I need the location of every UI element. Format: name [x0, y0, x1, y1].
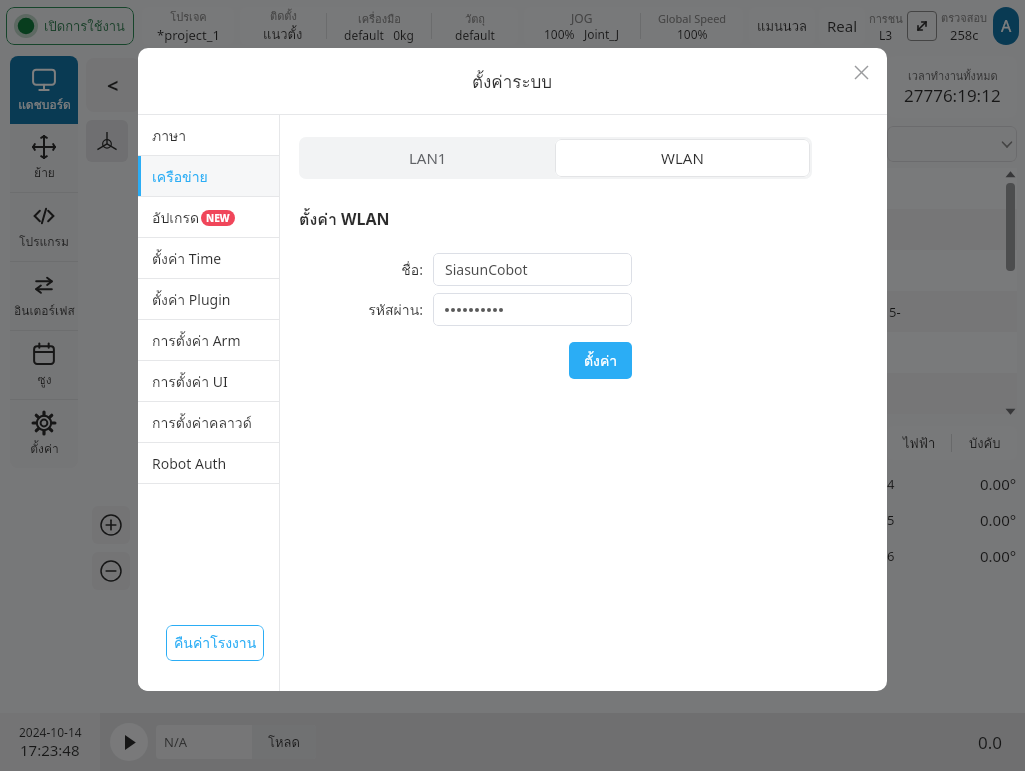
staticText: แนวตั้ง [263, 24, 303, 45]
button[interactable] [887, 168, 1017, 209]
staticText: ตั้งค่า Time [152, 248, 222, 270]
staticText: default [455, 27, 495, 43]
staticText: < [107, 72, 119, 99]
button[interactable] [445, 293, 620, 326]
staticText: อัปเกรด [152, 207, 200, 229]
staticText: Real [827, 16, 858, 36]
staticText: WLAN [661, 148, 704, 168]
button[interactable]: ย้าย [10, 124, 78, 192]
button[interactable]: เครือข่าย [138, 156, 279, 197]
button[interactable]: โปรแกรม [10, 193, 78, 261]
staticText: Robot Auth [152, 454, 227, 473]
button[interactable]: Real [819, 7, 865, 45]
button[interactable]: โปรเจค [142, 7, 234, 45]
button[interactable] [887, 126, 1017, 162]
button[interactable]: 5- [887, 291, 1017, 332]
staticText: แดชบอร์ด [18, 95, 71, 114]
button[interactable]: Fullscreen [907, 11, 937, 41]
staticText: รหัสผ่าน: [368, 299, 423, 321]
staticText: การตั้งค่า Arm [152, 330, 241, 352]
staticText: L3 [879, 27, 893, 43]
staticText: โหลด [268, 732, 300, 753]
staticText: LAN1 [409, 148, 447, 168]
staticText: ซูง [37, 370, 52, 389]
staticText: ตั้งค่า [584, 350, 618, 372]
button[interactable]: Robot Auth [138, 443, 279, 484]
button[interactable]: อินเตอร์เฟส [10, 262, 78, 330]
button[interactable]: Axis [86, 120, 128, 162]
button[interactable]: 6 [887, 538, 1017, 574]
button[interactable]: SiasunCobot [445, 253, 620, 286]
button[interactable]: Play [110, 723, 148, 761]
button[interactable]: JOG [524, 7, 743, 45]
button[interactable]: Close [849, 60, 873, 84]
staticText: การตั้งค่า UI [152, 371, 228, 393]
staticText: 17:23:48 [20, 740, 80, 760]
staticText: เครื่องมือ [358, 10, 401, 27]
button[interactable]: ซูง [10, 331, 78, 399]
staticText: NEW [206, 211, 230, 225]
button[interactable]: บังคับ [952, 426, 1017, 460]
staticText: JOG [571, 10, 593, 26]
button[interactable]: LAN1 [301, 139, 555, 177]
staticText: 0.0 [978, 731, 1003, 754]
staticText: *project_1 [157, 26, 220, 44]
button[interactable] [887, 250, 1017, 291]
staticText: 100% [677, 26, 708, 42]
button[interactable]: การตั้งค่า UI [138, 361, 279, 402]
button[interactable]: แมนนวล [749, 7, 815, 45]
button[interactable]: การตั้งค่า Arm [138, 320, 279, 361]
button[interactable]: เปิดการใช้งาน [14, 7, 126, 45]
button[interactable]: ตั้งค่า [10, 400, 78, 468]
button[interactable]: Zoom in [92, 506, 130, 544]
staticText: โปรแกรม [19, 232, 69, 251]
button[interactable]: Zoom out [92, 552, 130, 590]
button[interactable]: ตั้งค่า Time [138, 238, 279, 279]
button[interactable]: ติดตั้ง [240, 7, 518, 45]
staticText: ภาษา [152, 125, 187, 147]
staticText: ตั้งค่า Plugin [152, 289, 231, 311]
staticText: 100% Joint_J [544, 26, 620, 42]
button[interactable]: แดชบอร์ด [10, 56, 78, 124]
button[interactable]: WLAN [555, 139, 810, 177]
staticText: ย้าย [34, 163, 55, 182]
button[interactable]: Account [993, 7, 1019, 45]
staticText: 5 [887, 511, 895, 529]
button[interactable] [887, 373, 1017, 414]
staticText: 258c [950, 26, 979, 44]
staticText: คืนค่าโรงงาน [174, 632, 257, 654]
staticText: ตรวจสอบ [941, 9, 987, 26]
staticText: 4 [887, 475, 895, 493]
staticText: default 0kg [344, 27, 414, 43]
staticText: 5- [889, 303, 901, 321]
staticText: เครือข่าย [152, 166, 208, 188]
staticText: อินเตอร์เฟส [14, 301, 75, 320]
staticText: การชน [869, 10, 903, 27]
button[interactable]: ตั้งค่า Plugin [138, 279, 279, 320]
button[interactable] [887, 209, 1017, 250]
button[interactable]: การตั้งค่าคลาวด์ [138, 402, 279, 443]
button[interactable]: ภาษา [138, 115, 279, 156]
button[interactable]: โหลด [252, 725, 316, 759]
staticText: แมนนวล [757, 16, 807, 37]
staticText: 2024-10-14 [19, 724, 82, 740]
button[interactable]: 4 [887, 466, 1017, 502]
staticText: โปรเจค [170, 8, 207, 25]
staticText: ชื่อ: [401, 259, 423, 281]
staticText: 6 [887, 547, 895, 565]
staticText: ไฟฟ้า [903, 433, 936, 454]
button[interactable]: 5 [887, 502, 1017, 538]
staticText: ตั้งค่า WLAN [299, 207, 390, 232]
button[interactable]: ไฟฟ้า [887, 426, 951, 460]
button[interactable]: Back [86, 58, 140, 112]
button[interactable]: คืนค่าโรงงาน [166, 625, 264, 661]
button[interactable]: ตั้งค่า [569, 342, 632, 379]
staticText: A [1001, 15, 1012, 37]
staticText: วัตถุ [465, 10, 485, 27]
staticText: เปิดการใช้งาน [44, 16, 125, 37]
button[interactable]: เวลาทำงานทั้งหมด [887, 56, 1017, 118]
staticText: การตั้งค่าคลาวด์ [152, 412, 252, 434]
button[interactable]: อัปเกรด [138, 197, 279, 238]
staticText: เวลาทำงานทั้งหมด [908, 67, 998, 84]
